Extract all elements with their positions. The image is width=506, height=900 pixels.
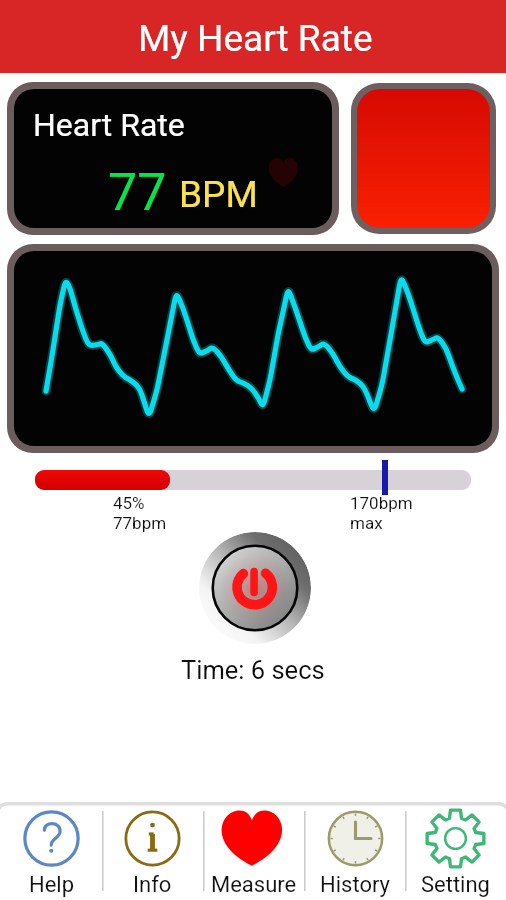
button[interactable]: Measure xyxy=(203,802,304,900)
staticText: History xyxy=(320,872,390,898)
button[interactable]: Help xyxy=(0,802,102,900)
button[interactable]: Setting xyxy=(405,802,506,900)
button[interactable]: History xyxy=(304,802,405,900)
staticText: 45% xyxy=(113,493,145,513)
button[interactable]: Heart Rate xyxy=(14,89,332,228)
button[interactable]: Measure heart rate xyxy=(199,532,311,644)
staticText: My Heart Rate xyxy=(138,17,373,60)
staticText: Help xyxy=(29,872,75,898)
staticText: 77bpm xyxy=(113,513,167,533)
staticText: BPM xyxy=(179,173,258,216)
button[interactable]: Info xyxy=(102,802,203,900)
staticText: 170bpm xyxy=(350,493,413,513)
staticText: Setting xyxy=(421,872,490,898)
button[interactable]: Start measuring xyxy=(357,89,490,228)
staticText: Heart Rate xyxy=(33,106,185,144)
staticText: Time: 6 secs xyxy=(181,655,325,685)
staticText: Measure xyxy=(211,872,297,898)
staticText: max xyxy=(350,513,383,533)
staticText: 77 xyxy=(108,162,167,223)
staticText: Info xyxy=(133,872,172,898)
